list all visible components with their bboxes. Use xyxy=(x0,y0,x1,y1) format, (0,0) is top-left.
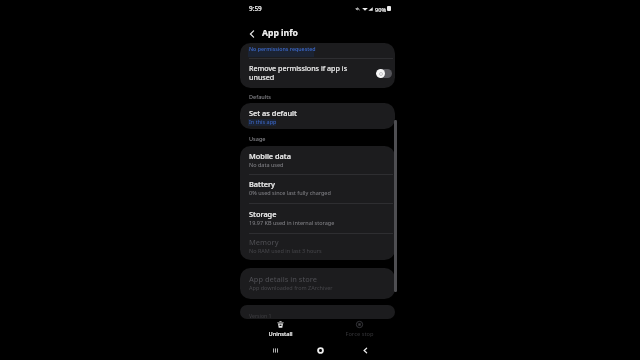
button[interactable]: Battery xyxy=(240,174,395,202)
button[interactable]: Set as default xyxy=(240,103,395,129)
button[interactable]: App details in store xyxy=(240,268,395,299)
staticText: 19.97 KB used in internal storage xyxy=(249,219,335,226)
staticText: Remove permissions if app is unused xyxy=(249,63,353,82)
button[interactable]: Uninstall xyxy=(256,319,305,340)
staticText: Set as default xyxy=(249,108,297,118)
button[interactable]: Home xyxy=(310,340,330,360)
button[interactable]: Remove permissions if app is unused xyxy=(240,59,395,88)
staticText: No permissions requested xyxy=(249,45,316,52)
staticText: App downloaded from ZArchiver xyxy=(249,284,333,291)
staticText: 90% xyxy=(375,6,387,14)
button[interactable]: Navigate up xyxy=(242,24,262,44)
staticText: Mobile data xyxy=(249,151,291,161)
staticText: Uninstall xyxy=(268,330,293,338)
button[interactable]: Storage xyxy=(240,203,395,233)
staticText: Version 1 xyxy=(249,312,272,319)
button[interactable]: Back xyxy=(355,340,375,360)
staticText: 0% used since last fully charged xyxy=(249,189,331,196)
button[interactable]: Force stop xyxy=(335,319,384,340)
staticText: Battery xyxy=(249,179,275,189)
button[interactable]: Remove permissions if app is unused togg… xyxy=(376,69,392,78)
staticText: Usage xyxy=(249,135,266,142)
staticText: No data used xyxy=(249,161,284,168)
button[interactable]: No permissions requested xyxy=(240,43,395,58)
staticText: Storage xyxy=(249,209,277,219)
staticText: App info xyxy=(262,27,298,39)
staticText: No RAM used in last 3 hours xyxy=(249,247,322,254)
staticText: 9:59 xyxy=(249,4,262,13)
button[interactable]: Recent apps xyxy=(265,340,285,360)
staticText: Memory xyxy=(249,237,279,247)
staticText: Force stop xyxy=(345,330,374,338)
staticText: Defaults xyxy=(249,93,272,100)
staticText: App details in store xyxy=(249,274,318,284)
button[interactable]: Memory xyxy=(240,233,395,260)
staticText: In this app xyxy=(249,118,277,125)
button[interactable]: Mobile data xyxy=(240,146,395,174)
